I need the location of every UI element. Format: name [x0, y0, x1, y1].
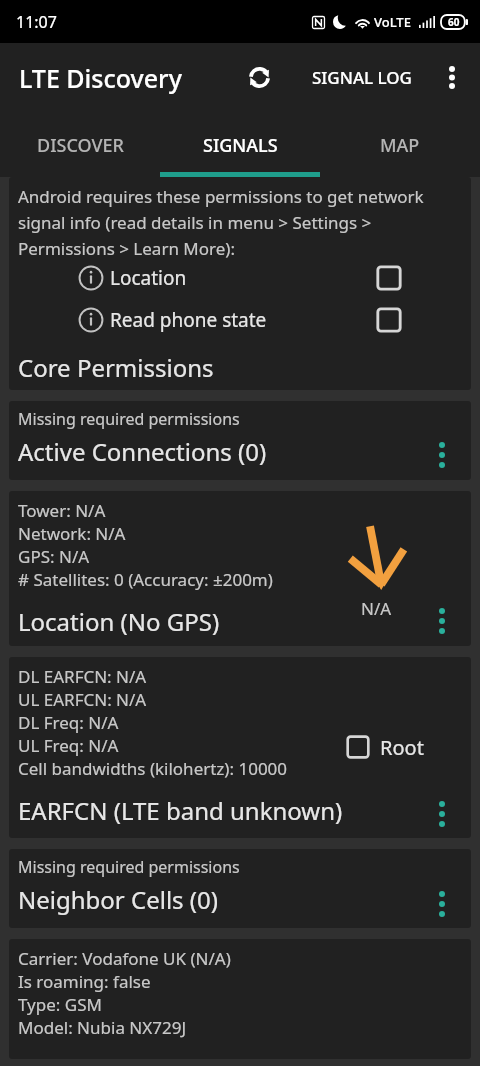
staticText: UL EARFCN: N/A — [18, 688, 147, 711]
staticText: DL Freq: N/A — [18, 711, 119, 734]
staticText: N/A — [361, 597, 392, 620]
staticText: Missing required permissions — [18, 856, 240, 878]
staticText: Carrier: Vodafone UK (N/A) — [18, 947, 231, 970]
staticText: UL Freq: N/A — [18, 734, 119, 757]
staticText: Type: GSM — [18, 993, 102, 1016]
staticText: DISCOVER — [37, 133, 124, 158]
button[interactable]: More options — [430, 55, 474, 99]
button[interactable]: DL EARFCN: N/A — [9, 657, 471, 838]
staticText: SIGNAL LOG — [312, 66, 412, 89]
button[interactable]: Root — [346, 730, 424, 764]
staticText: Android requires these permissions to ge… — [18, 185, 462, 260]
button[interactable]: Tower: N/A — [9, 491, 471, 646]
staticText: Model: Nubia NX729J — [18, 1016, 187, 1039]
staticText: Is roaming: false — [18, 970, 151, 993]
staticText: 60 — [448, 15, 460, 29]
button[interactable]: Card options — [423, 885, 461, 923]
button[interactable]: Android requires these permissions to ge… — [9, 177, 471, 390]
staticText: LTE Discovery — [19, 61, 182, 95]
staticText: MAP — [380, 133, 420, 158]
staticText: Cell bandwidths (kilohertz): 10000 — [18, 757, 288, 780]
staticText: # Satellites: 0 (Accuracy: ±200m) — [18, 568, 273, 591]
staticText: VoLTE — [374, 13, 411, 31]
staticText: Missing required permissions — [18, 408, 240, 430]
staticText: Read phone state — [110, 307, 376, 333]
staticText: Location — [110, 265, 376, 291]
staticText: Network: N/A — [18, 522, 126, 545]
staticText: Location (No GPS) — [18, 605, 220, 638]
staticText: Active Connections (0) — [18, 435, 267, 468]
staticText: Root — [380, 734, 424, 761]
button[interactable]: Carrier: Vodafone UK (N/A) — [9, 939, 471, 1059]
button[interactable]: Missing required permissions — [9, 849, 471, 928]
staticText: GPS: N/A — [18, 545, 90, 568]
staticText: EARFCN (LTE band unknown) — [18, 794, 343, 827]
button[interactable]: Read phone state — [78, 304, 402, 336]
staticText: Neighbor Cells (0) — [18, 883, 218, 916]
button[interactable]: SIGNALS — [160, 110, 320, 177]
staticText: SIGNALS — [203, 133, 278, 158]
button[interactable]: Card options — [423, 602, 461, 640]
button[interactable]: DISCOVER — [0, 110, 160, 177]
button[interactable]: MAP — [320, 110, 480, 177]
button[interactable]: Missing required permissions — [9, 401, 471, 480]
staticText: DL EARFCN: N/A — [18, 665, 147, 688]
button[interactable]: SIGNAL LOG — [300, 53, 424, 101]
button[interactable]: Card options — [423, 795, 461, 833]
staticText: 11:07 — [16, 11, 57, 33]
button[interactable]: Refresh — [235, 53, 283, 101]
button[interactable]: Card options — [423, 436, 461, 474]
button[interactable]: Location — [78, 262, 402, 294]
staticText: Core Permissions — [18, 351, 214, 384]
staticText: Tower: N/A — [18, 499, 106, 522]
